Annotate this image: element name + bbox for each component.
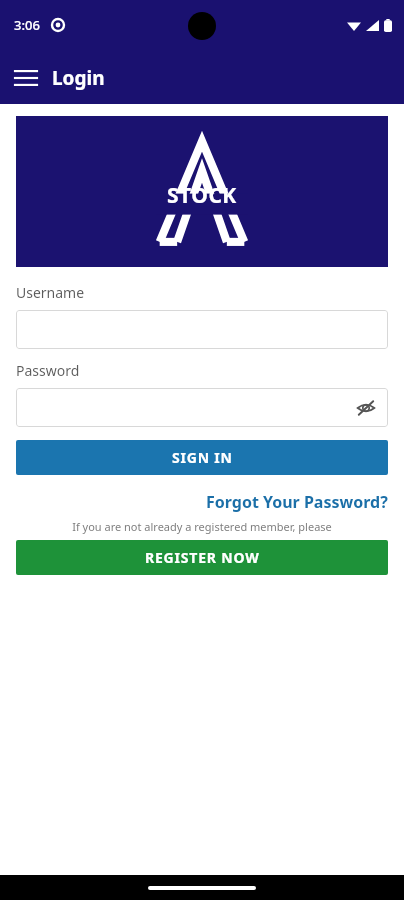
staticText: REGISTER NOW — [145, 548, 260, 567]
button[interactable]: Forgot Your Password? — [190, 489, 404, 515]
staticText: 3:06 — [14, 16, 40, 34]
staticText: Forgot Your Password? — [206, 491, 388, 513]
staticText: Username — [16, 283, 85, 302]
staticText: Login — [52, 65, 105, 91]
button[interactable]: Toggle password visibility — [16, 388, 388, 427]
staticText: Password — [16, 361, 80, 380]
staticText: STOCK — [167, 181, 237, 210]
staticText: SIGN IN — [172, 448, 233, 467]
button[interactable] — [16, 310, 388, 349]
button[interactable]: Open navigation menu — [6, 58, 46, 98]
staticText: If you are not already a registered memb… — [16, 519, 388, 534]
button[interactable]: REGISTER NOW — [16, 540, 388, 575]
button[interactable]: SIGN IN — [16, 440, 388, 475]
button[interactable]: Toggle password visibility — [352, 394, 380, 422]
